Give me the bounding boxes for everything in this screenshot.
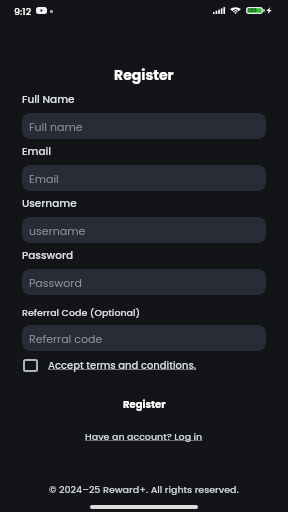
button[interactable]: username [22, 217, 266, 243]
staticText: Password [22, 248, 74, 263]
staticText: Have an account? Log in [85, 430, 203, 443]
button[interactable]: Referral code [22, 325, 266, 351]
staticText: username [29, 223, 86, 238]
button[interactable]: Password [22, 269, 266, 295]
button[interactable]: Have an account? Log in [0, 430, 288, 443]
button[interactable]: Register [0, 397, 288, 411]
staticText: Password [29, 275, 82, 290]
staticText: 100 [248, 7, 257, 14]
staticText: Full Name [22, 92, 75, 107]
staticText: Register [114, 65, 174, 85]
staticText: Email [22, 144, 52, 159]
button[interactable]: Full name [22, 113, 266, 139]
staticText: Register [123, 397, 166, 411]
button[interactable]: Accept terms and conditions. [23, 358, 197, 372]
button[interactable]: Email [22, 165, 266, 191]
staticText: Referral Code (Optional) [22, 306, 141, 319]
staticText: Accept terms and conditions. [48, 358, 197, 372]
staticText: Full name [29, 119, 83, 134]
staticText: Referral code [29, 331, 103, 346]
staticText: Email [29, 171, 59, 186]
staticText: 9:12 [14, 5, 32, 18]
staticText: Username [22, 196, 77, 211]
staticText: © 2024–25 Reward+. All rights reserved. [49, 483, 239, 496]
